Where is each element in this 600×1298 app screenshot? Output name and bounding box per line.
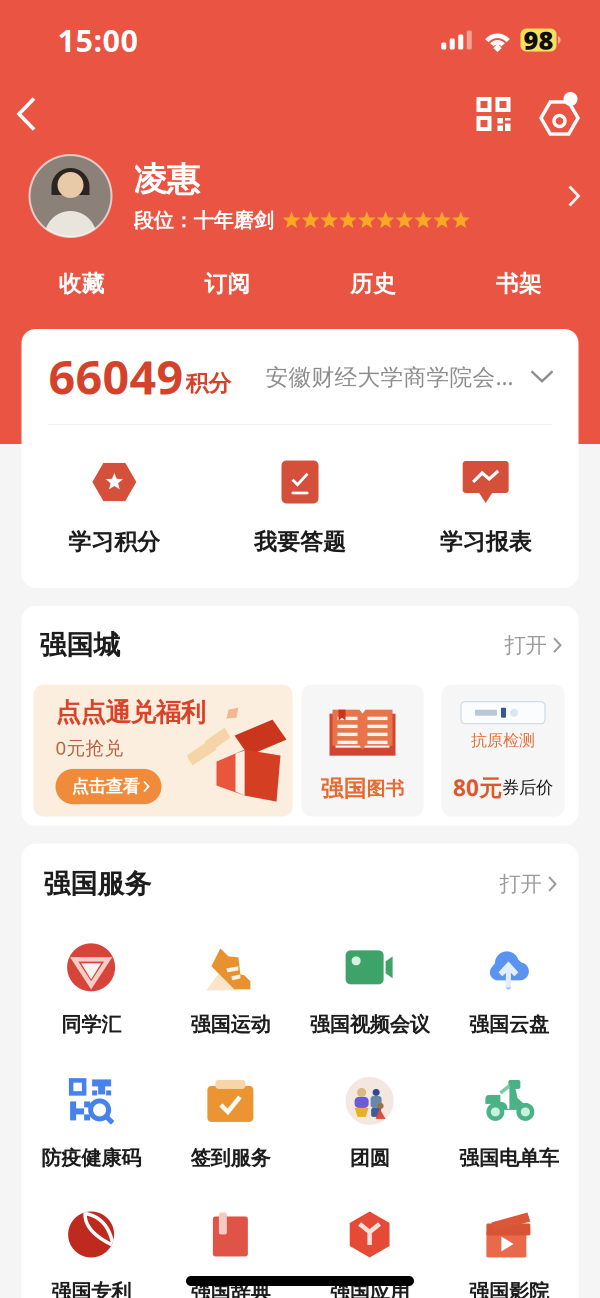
- button[interactable]: 抗原检测: [441, 685, 564, 817]
- staticText: 积分: [185, 370, 231, 397]
- staticText: 点击查看: [71, 776, 139, 797]
- staticText: 强国专利: [51, 1279, 131, 1298]
- button[interactable]: 66049: [21, 329, 578, 424]
- staticText: 图书: [366, 777, 404, 800]
- staticText: 0元抢兑: [55, 735, 123, 760]
- staticText: 券后价: [502, 777, 553, 798]
- button[interactable]: 学习报表: [393, 458, 578, 556]
- staticText: 段位：十年磨剑: [133, 208, 273, 233]
- button[interactable]: 强国电单车: [439, 1076, 578, 1170]
- button[interactable]: 强国云盘: [439, 942, 578, 1037]
- button[interactable]: 点点通兑福利: [33, 685, 292, 817]
- button[interactable]: 同学汇: [21, 942, 161, 1037]
- staticText: 凌惠: [133, 159, 199, 200]
- button[interactable]: Back: [0, 90, 53, 137]
- staticText: 强国影院: [469, 1279, 549, 1298]
- button[interactable]: 签到服务: [161, 1076, 300, 1170]
- staticText: 打开: [504, 632, 546, 658]
- staticText: 强国: [320, 775, 366, 803]
- button[interactable]: 团圆: [300, 1076, 439, 1170]
- staticText: 点点通兑福利: [55, 697, 205, 728]
- staticText: 强国辞典: [190, 1279, 270, 1298]
- button[interactable]: Scan QR code: [470, 91, 516, 137]
- staticText: 强国电单车: [459, 1146, 559, 1170]
- button[interactable]: 强国视频会议: [300, 942, 439, 1037]
- staticText: 强国城: [39, 629, 120, 662]
- button[interactable]: 强国应用: [300, 1209, 439, 1298]
- button[interactable]: 打开: [504, 632, 561, 658]
- button[interactable]: 强国: [301, 685, 423, 817]
- staticText: 强国视频会议: [310, 1012, 430, 1037]
- staticText: 团圆: [350, 1146, 390, 1170]
- staticText: 书架: [496, 270, 542, 298]
- button[interactable]: 打开: [499, 871, 556, 897]
- button[interactable]: 书架: [446, 261, 592, 307]
- staticText: 签到服务: [190, 1146, 270, 1170]
- button[interactable]: 收藏: [8, 261, 154, 307]
- button[interactable]: 凌惠: [0, 148, 600, 244]
- staticText: 安徽财经大学商学院会…: [265, 361, 513, 391]
- staticText: 抗原检测: [471, 731, 535, 750]
- staticText: 我要答题: [254, 528, 346, 556]
- staticText: 学习积分: [68, 528, 160, 556]
- staticText: 66049: [48, 345, 183, 407]
- staticText: 强国应用: [330, 1279, 410, 1298]
- staticText: 防疫健康码: [41, 1146, 141, 1170]
- button[interactable]: 防疫健康码: [21, 1076, 161, 1170]
- staticText: 打开: [499, 871, 541, 897]
- button[interactable]: 强国影院: [439, 1209, 578, 1298]
- staticText: 强国运动: [190, 1012, 270, 1037]
- button[interactable]: 强国辞典: [161, 1209, 300, 1298]
- staticText: 强国服务: [43, 868, 151, 900]
- button[interactable]: 订阅: [154, 261, 300, 307]
- button[interactable]: 强国运动: [161, 942, 300, 1037]
- button[interactable]: 强国专利: [21, 1209, 161, 1298]
- button[interactable]: 历史: [300, 261, 446, 307]
- staticText: 15:00: [57, 20, 138, 60]
- button[interactable]: 学习积分: [21, 458, 207, 556]
- staticText: 历史: [350, 270, 396, 298]
- staticText: 订阅: [204, 270, 250, 298]
- staticText: 98: [523, 23, 553, 57]
- staticText: 收藏: [58, 270, 104, 298]
- staticText: 同学汇: [61, 1012, 121, 1037]
- staticText: 80元: [453, 772, 502, 803]
- button[interactable]: Settings: [540, 92, 585, 136]
- staticText: 学习报表: [440, 528, 532, 556]
- staticText: 强国云盘: [469, 1012, 549, 1037]
- button[interactable]: 我要答题: [207, 458, 393, 556]
